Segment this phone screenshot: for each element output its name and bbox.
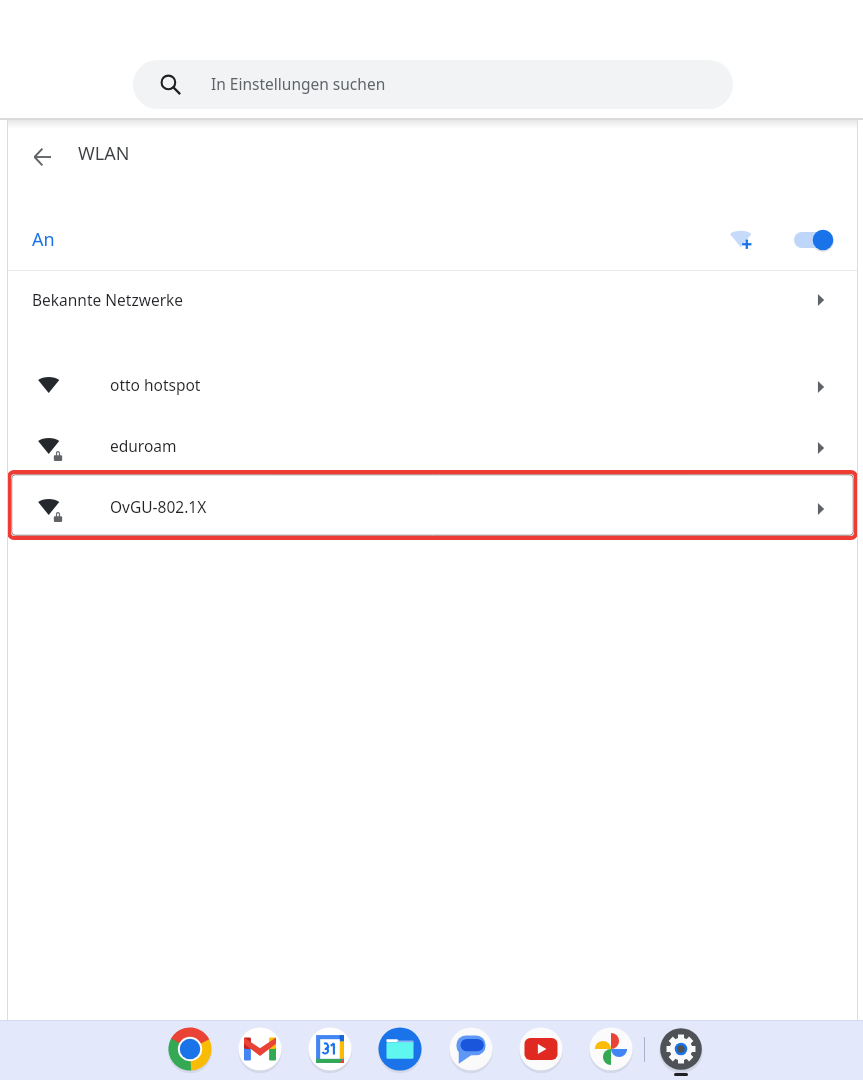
button[interactable]: An [7,208,858,270]
button[interactable]: Settings [655,1023,707,1075]
staticText: WLAN [78,141,130,166]
button[interactable]: In Einstellungen suchen [133,60,733,109]
staticText: Bekannte Netzwerke [32,289,184,310]
button[interactable]: WiFi on [787,220,847,260]
button[interactable]: Back [27,137,67,177]
button[interactable]: Calendar [304,1023,356,1075]
button[interactable]: otto hotspot [7,357,858,418]
button[interactable]: YouTube [515,1023,567,1075]
staticText: An [32,227,55,252]
button[interactable]: Chrome [164,1023,216,1075]
staticText: otto hotspot [110,374,201,395]
button[interactable]: Messages [445,1023,497,1075]
button[interactable]: Gmail [234,1023,286,1075]
staticText: eduroam [110,435,177,456]
button[interactable]: Files [374,1023,426,1075]
staticText: In Einstellungen suchen [211,73,386,94]
button[interactable]: OvGU-802.1X [7,479,858,540]
button[interactable]: Photos [585,1023,637,1075]
staticText: OvGU-802.1X [110,496,207,517]
button[interactable]: Add WiFi network [730,222,762,254]
button[interactable]: Bekannte Netzwerke [7,271,858,330]
button[interactable]: eduroam [7,418,858,479]
